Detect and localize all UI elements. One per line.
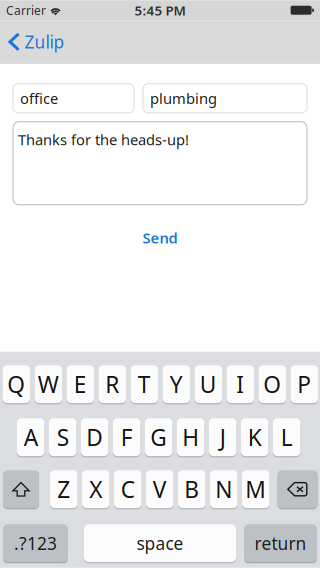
staticText: office xyxy=(20,88,58,108)
button[interactable]: G xyxy=(145,418,172,457)
button[interactable]: R xyxy=(98,365,126,404)
button[interactable]: B xyxy=(178,470,205,509)
staticText: Send xyxy=(142,228,177,247)
button[interactable]: H xyxy=(177,418,204,457)
staticText: G xyxy=(150,422,167,452)
button[interactable]: Y xyxy=(162,365,190,404)
staticText: N xyxy=(215,474,232,504)
button[interactable]: Send xyxy=(122,227,198,249)
button[interactable]: T xyxy=(130,365,158,404)
button[interactable]: V xyxy=(146,470,173,509)
button[interactable]: C xyxy=(114,470,141,509)
button[interactable]: F xyxy=(113,418,140,457)
button[interactable]: Shift xyxy=(3,470,39,509)
staticText: U xyxy=(200,369,217,399)
button[interactable]: K xyxy=(241,418,268,457)
staticText: J xyxy=(220,422,226,452)
staticText: I xyxy=(236,369,244,399)
staticText: D xyxy=(86,422,103,452)
staticText: F xyxy=(121,422,133,452)
staticText: X xyxy=(89,474,102,504)
staticText: T xyxy=(138,369,151,399)
button[interactable]: .?123 xyxy=(3,524,68,563)
button[interactable]: O xyxy=(258,365,286,404)
staticText: M xyxy=(245,474,266,504)
staticText: K xyxy=(248,422,262,452)
button[interactable]: Z xyxy=(50,470,77,509)
staticText: plumbing xyxy=(150,88,217,108)
staticText: E xyxy=(74,369,87,399)
staticText: Z xyxy=(57,474,70,504)
staticText: space xyxy=(136,532,183,555)
button[interactable]: I xyxy=(226,365,254,404)
staticText: Carrier xyxy=(6,2,46,18)
staticText: P xyxy=(297,369,311,399)
button[interactable]: A xyxy=(17,418,44,457)
button[interactable]: X xyxy=(82,470,109,509)
button[interactable]: Zulip xyxy=(0,20,72,63)
staticText: .?123 xyxy=(14,532,57,555)
button[interactable]: D xyxy=(81,418,108,457)
button[interactable]: J xyxy=(209,418,236,457)
staticText: S xyxy=(57,422,69,452)
button[interactable]: M xyxy=(242,470,269,509)
staticText: V xyxy=(153,474,167,504)
staticText: C xyxy=(121,474,135,504)
button[interactable]: return xyxy=(244,524,317,563)
staticText: A xyxy=(24,422,38,452)
staticText: B xyxy=(184,474,199,504)
button[interactable]: U xyxy=(194,365,222,404)
staticText: Q xyxy=(7,369,25,399)
staticText: W xyxy=(38,369,59,399)
button[interactable]: E xyxy=(66,365,94,404)
staticText: O xyxy=(263,369,281,399)
button[interactable]: L xyxy=(273,418,300,457)
button[interactable]: S xyxy=(49,418,76,457)
button[interactable]: Delete xyxy=(277,470,317,509)
staticText: Thanks for the heads-up! xyxy=(18,130,189,149)
staticText: Y xyxy=(170,369,183,399)
staticText: R xyxy=(105,369,119,399)
staticText: H xyxy=(182,422,199,452)
button[interactable]: Q xyxy=(2,365,30,404)
staticText: L xyxy=(281,422,293,452)
button[interactable]: space xyxy=(84,524,236,563)
button[interactable]: W xyxy=(34,365,62,404)
button[interactable]: N xyxy=(210,470,237,509)
button[interactable]: P xyxy=(290,365,318,404)
staticText: Zulip xyxy=(24,30,64,53)
staticText: return xyxy=(254,532,306,555)
staticText: 5:45 PM xyxy=(134,1,185,19)
